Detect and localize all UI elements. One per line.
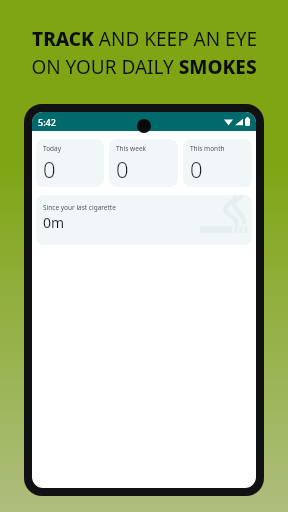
staticText: 0 xyxy=(43,154,56,184)
button[interactable]: Today xyxy=(36,139,104,187)
staticText: TRACK AND KEEP AN EYE xyxy=(32,26,257,52)
button[interactable]: Since your last cigarette xyxy=(36,195,252,245)
button[interactable]: This week xyxy=(109,139,178,187)
staticText: Since your last cigarette xyxy=(43,203,116,212)
staticText: 0 xyxy=(190,154,203,184)
staticText: 0 xyxy=(116,154,129,184)
button[interactable]: This month xyxy=(183,139,252,187)
staticText: This month xyxy=(190,144,225,153)
other: Cigarette xyxy=(200,200,246,240)
staticText: This week xyxy=(116,144,147,153)
staticText: 0m xyxy=(43,213,65,232)
staticText: ON YOUR DAILY SMOKES xyxy=(31,54,257,80)
staticText: Today xyxy=(43,144,62,153)
staticText: 5:42 xyxy=(38,116,56,128)
